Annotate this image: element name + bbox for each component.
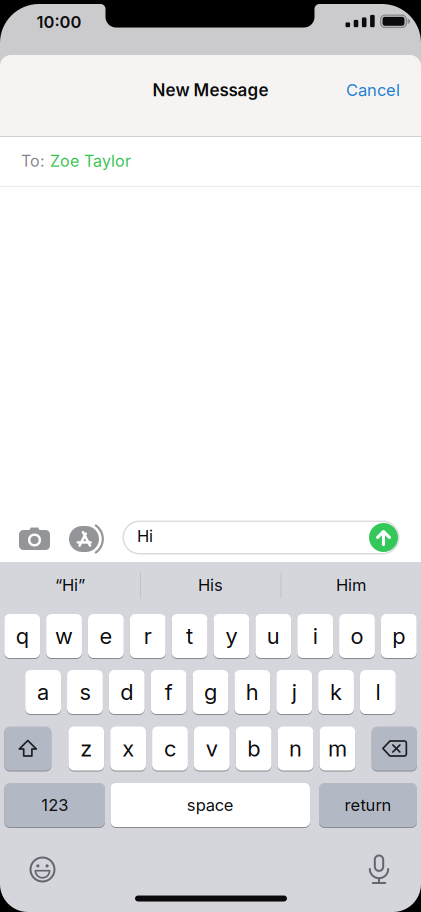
staticText: His (198, 575, 223, 595)
staticText: g (204, 679, 217, 705)
button[interactable]: g (193, 670, 228, 714)
staticText: k (330, 679, 342, 705)
staticText: q (16, 623, 29, 649)
staticText: x (122, 735, 134, 762)
button[interactable]: Delete (372, 726, 417, 770)
button[interactable]: v (194, 726, 230, 770)
button[interactable]: f (151, 670, 187, 714)
button[interactable]: Numbers (4, 783, 105, 827)
staticText: “Hi” (55, 575, 85, 595)
staticText: d (120, 679, 133, 705)
staticText: e (99, 623, 112, 649)
button[interactable]: s (67, 670, 103, 714)
button[interactable]: “Hi” (0, 562, 140, 608)
button[interactable]: d (109, 670, 145, 714)
staticText: Zoe Taylor (50, 151, 131, 171)
button[interactable]: k (318, 670, 354, 714)
staticText: New Message (152, 80, 268, 100)
button[interactable]: Camera (19, 526, 53, 554)
button[interactable]: space (110, 783, 310, 827)
button[interactable]: His (140, 562, 280, 608)
button[interactable]: q (4, 614, 40, 658)
staticText: y (225, 623, 237, 649)
staticText: l (375, 679, 380, 705)
staticText: v (206, 735, 218, 762)
button[interactable]: a (25, 670, 61, 714)
staticText: Hi (137, 526, 153, 546)
button[interactable]: n (278, 726, 313, 770)
staticText: r (144, 623, 152, 649)
staticText: b (247, 735, 260, 762)
button[interactable]: u (255, 614, 291, 658)
staticText: To: (21, 151, 45, 171)
button[interactable]: Apps (69, 522, 109, 556)
button[interactable]: Emoji (28, 855, 56, 883)
button[interactable]: h (234, 670, 270, 714)
button[interactable]: c (152, 726, 188, 770)
staticText: n (289, 735, 302, 762)
button[interactable]: Zoe Taylor (50, 151, 131, 171)
staticText: 10:00 (36, 12, 81, 32)
staticText: o (350, 623, 363, 649)
button[interactable]: Him (281, 562, 421, 608)
button[interactable]: p (381, 614, 417, 658)
button[interactable]: Shift (4, 726, 51, 770)
button[interactable]: o (339, 614, 375, 658)
button[interactable]: y (214, 614, 249, 658)
staticText: z (80, 735, 92, 762)
staticText: i (313, 623, 318, 649)
staticText: j (292, 679, 297, 705)
staticText: m (328, 735, 347, 762)
button[interactable]: e (88, 614, 124, 658)
button[interactable]: Return (319, 783, 417, 827)
button[interactable]: i (297, 614, 333, 658)
button[interactable]: l (360, 670, 396, 714)
button[interactable]: m (319, 726, 355, 770)
staticText: Him (336, 575, 366, 595)
button[interactable]: w (46, 614, 82, 658)
staticText: a (37, 679, 49, 705)
staticText: p (392, 623, 405, 649)
button[interactable]: j (276, 670, 312, 714)
button[interactable]: b (236, 726, 272, 770)
staticText: u (267, 623, 280, 649)
staticText: space (187, 795, 234, 815)
staticText: Cancel (346, 80, 400, 100)
button[interactable]: Cancel (320, 75, 400, 105)
button[interactable]: t (172, 614, 207, 658)
staticText: c (164, 735, 176, 762)
staticText: 123 (41, 795, 68, 815)
staticText: w (55, 623, 73, 649)
staticText: f (165, 679, 173, 705)
button[interactable]: z (68, 726, 104, 770)
button[interactable]: Send (369, 523, 398, 552)
staticText: return (344, 795, 391, 815)
staticText: h (246, 679, 259, 705)
button[interactable]: r (130, 614, 166, 658)
button[interactable]: x (110, 726, 146, 770)
staticText: t (186, 623, 193, 649)
button[interactable]: Dictation (367, 854, 391, 884)
staticText: s (79, 679, 90, 705)
